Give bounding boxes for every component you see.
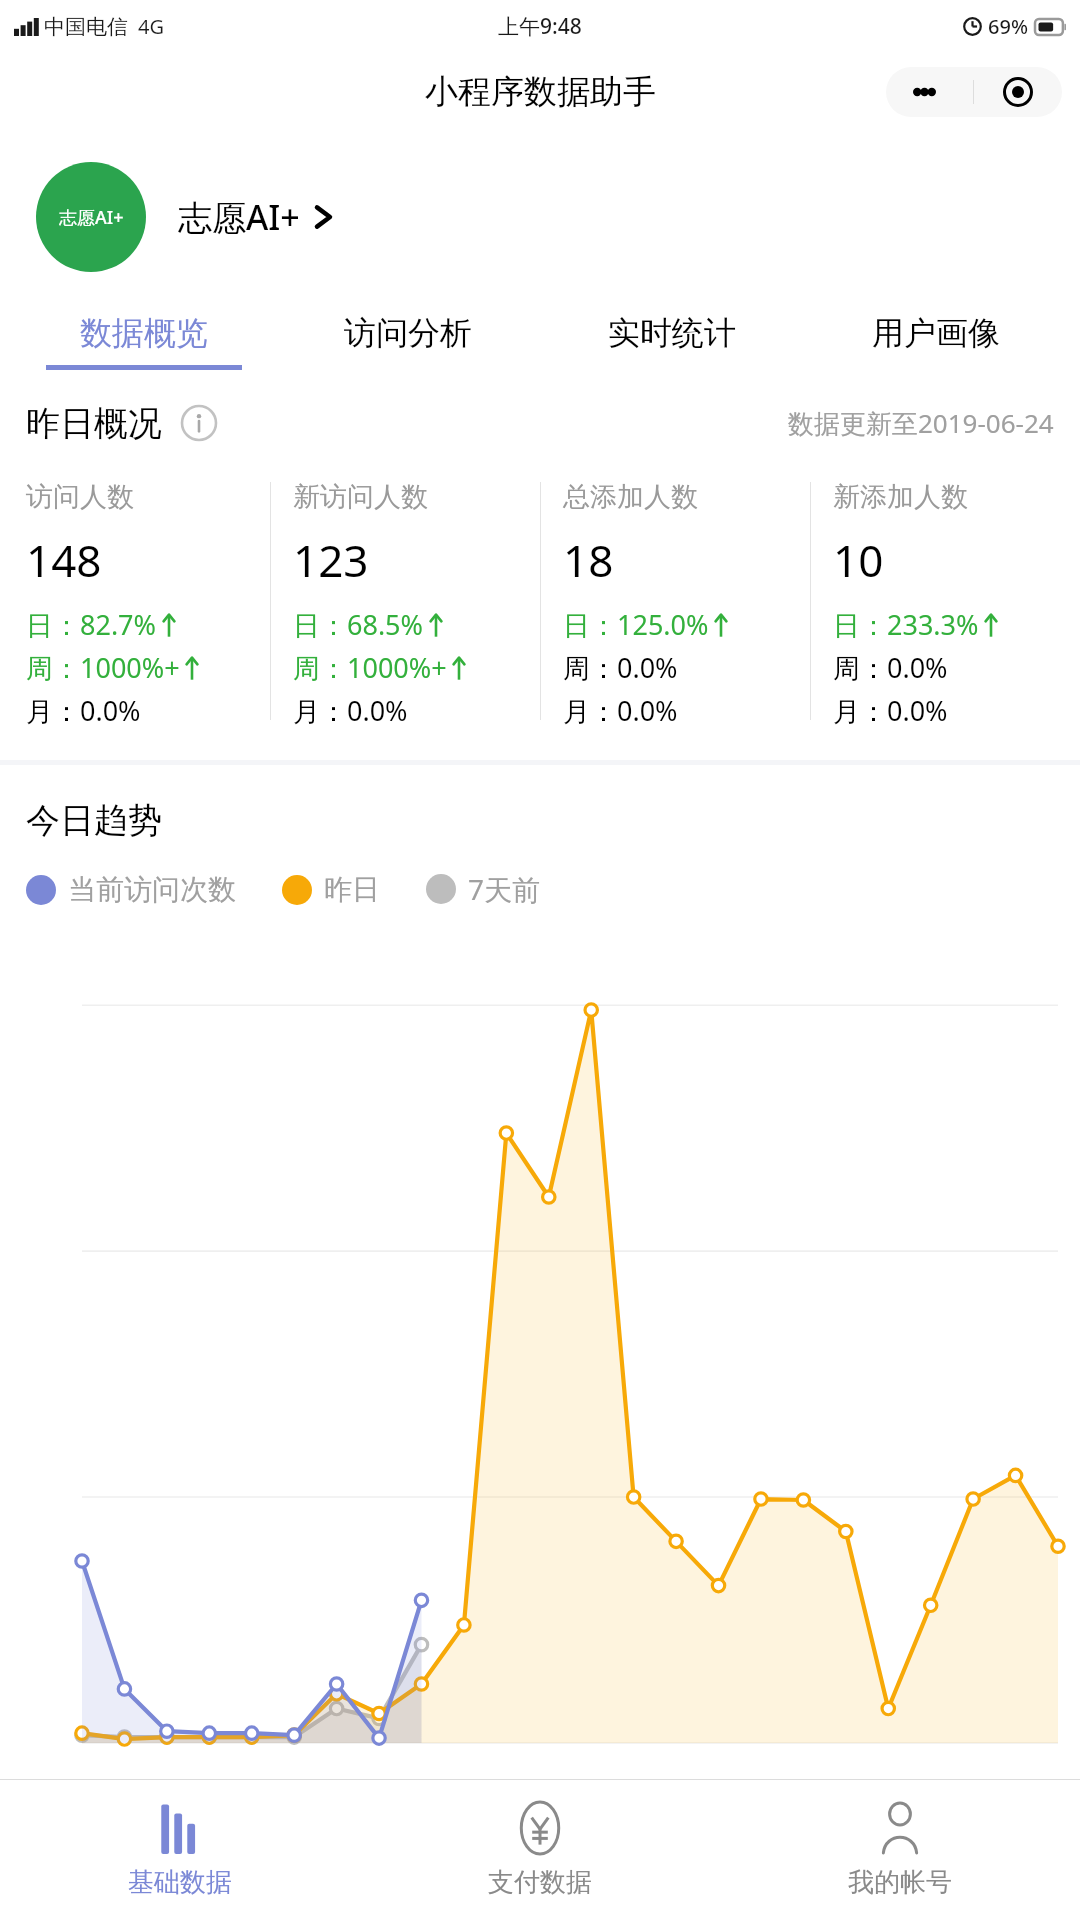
button[interactable]: More	[886, 67, 973, 117]
staticText: 69%	[988, 13, 1028, 40]
button[interactable]: 用户画像	[804, 302, 1068, 380]
staticText: 7天前	[468, 870, 541, 908]
staticText: 今日趋势	[26, 799, 162, 842]
button[interactable]: 实时统计	[540, 302, 804, 380]
staticText: 10	[833, 530, 884, 590]
button[interactable]: 我的帐号	[720, 1780, 1080, 1920]
button[interactable]: 数据概览	[12, 302, 276, 380]
button[interactable]: Close	[974, 67, 1062, 117]
staticText: 4G	[138, 13, 164, 40]
staticText: 昨日概况	[26, 402, 162, 445]
staticText: 总添加人数	[563, 480, 698, 514]
staticText: 数据概览	[80, 313, 208, 353]
button[interactable]: 志愿AI+	[0, 132, 1080, 302]
staticText: 周：0.0%	[563, 649, 678, 686]
staticText: 月：0.0%	[293, 692, 408, 729]
staticText: 月：0.0%	[26, 692, 141, 729]
button[interactable]: 支付数据	[360, 1780, 720, 1920]
button[interactable]: 总添加人数	[541, 466, 810, 736]
staticText: 148	[26, 530, 102, 590]
staticText: 基础数据	[128, 1866, 232, 1899]
staticText: 当前访问次数	[68, 872, 236, 907]
staticText: 周：1000%+	[26, 649, 180, 686]
staticText: 数据更新至2019-06-24	[788, 405, 1054, 441]
staticText: 用户画像	[872, 313, 1000, 353]
button[interactable]: 访问分析	[276, 302, 540, 380]
staticText: 日：68.5%	[293, 606, 424, 643]
staticText: 昨日	[324, 872, 380, 907]
staticText: 月：0.0%	[833, 692, 948, 729]
staticText: 志愿AI+	[178, 194, 300, 240]
staticText: 日：125.0%	[563, 606, 709, 643]
staticText: 我的帐号	[848, 1866, 952, 1899]
staticText: 新添加人数	[833, 480, 968, 514]
button[interactable]: 访问人数	[0, 466, 270, 736]
staticText: 小程序数据助手	[425, 71, 656, 113]
staticText: 志愿AI+	[59, 205, 124, 230]
staticText: 中国电信	[44, 14, 128, 40]
button[interactable]: 新访问人数	[271, 466, 540, 736]
button[interactable]: Info	[180, 404, 218, 442]
staticText: 实时统计	[608, 313, 736, 353]
staticText: 周：1000%+	[293, 649, 447, 686]
staticText: 访问分析	[344, 313, 472, 353]
staticText: 日：233.3%	[833, 606, 979, 643]
staticText: 日：82.7%	[26, 606, 157, 643]
staticText: 123	[293, 530, 369, 590]
staticText: 月：0.0%	[563, 692, 678, 729]
staticText: 支付数据	[488, 1866, 592, 1899]
staticText: 上午9:48	[498, 12, 582, 41]
staticText: 18	[563, 530, 614, 590]
button[interactable]: 新添加人数	[811, 466, 1080, 736]
button[interactable]: 基础数据	[0, 1780, 360, 1920]
staticText: 新访问人数	[293, 480, 428, 514]
staticText: 周：0.0%	[833, 649, 948, 686]
staticText: 访问人数	[26, 480, 134, 514]
